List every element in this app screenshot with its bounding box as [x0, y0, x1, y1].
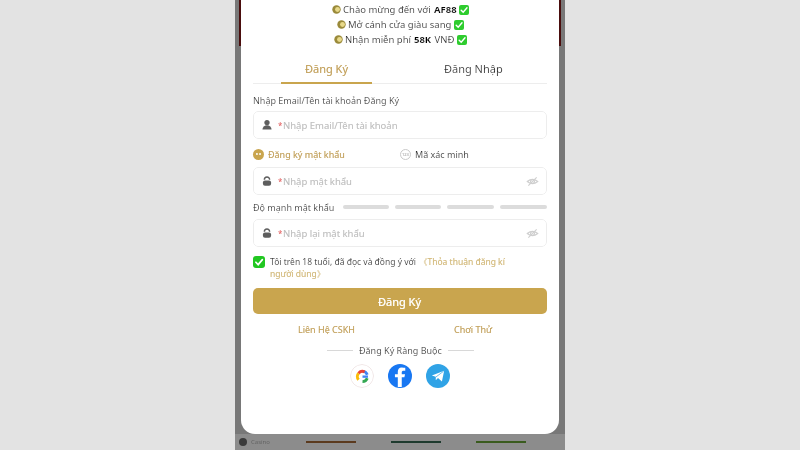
staticText: Nhập Email/Tên tài khoản [283, 119, 398, 132]
staticText: Độ mạnh mật khẩu [253, 201, 335, 213]
staticText: AF88 [434, 3, 457, 16]
staticText: Casino [251, 438, 270, 446]
button[interactable]: Đăng Ký [253, 55, 400, 81]
button[interactable]: * [253, 219, 547, 247]
staticText: Liên Hệ CSKH [298, 323, 355, 335]
staticText: Đăng Ký Ràng Buộc [359, 344, 442, 356]
staticText: Mở cánh cửa giàu sang [348, 18, 452, 31]
staticText: Đăng Nhập [444, 61, 503, 76]
staticText: Mã xác minh [415, 148, 469, 160]
button[interactable]: Đăng ký mật khẩu [253, 146, 400, 162]
staticText: Nhập Email/Tên tài khoản Đăng Ký [253, 94, 400, 106]
staticText: Tôi trên 18 tuổi, đã đọc và đồng ý với [270, 256, 419, 268]
button[interactable]: 123 [400, 146, 547, 162]
button[interactable]: Đăng Ký [253, 288, 547, 314]
staticText: Chào mừng đến với [343, 3, 434, 16]
button[interactable]: Liên Hệ CSKH [253, 322, 400, 336]
button[interactable]: Hiện mật khẩu [526, 227, 539, 240]
staticText: người dùng》 [270, 268, 326, 280]
staticText: 123 [402, 152, 409, 157]
staticText: Nhận miễn phí [345, 33, 414, 46]
staticText: * [278, 176, 283, 187]
button[interactable]: Hiện mật khẩu [526, 175, 539, 188]
staticText: 《Thỏa thuận đăng kí [419, 256, 505, 268]
staticText: Nhập lại mật khẩu [283, 227, 365, 240]
button[interactable]: Chơi Thử [400, 322, 547, 336]
button[interactable]: Đăng nhập với Google [350, 364, 374, 388]
staticText: Nhập mật khẩu [283, 175, 352, 188]
button[interactable]: * [253, 111, 547, 139]
button[interactable]: Tôi trên 18 tuổi, đã đọc và đồng ý với [253, 256, 547, 280]
staticText: VNĐ [432, 33, 455, 46]
staticText: Đăng Ký [305, 61, 349, 76]
staticText: 58K [414, 33, 432, 46]
button[interactable]: * [253, 167, 547, 195]
staticText: Đăng Ký [378, 294, 422, 309]
staticText: Chơi Thử [454, 323, 493, 335]
button[interactable]: Đăng nhập với Telegram [426, 364, 450, 388]
button[interactable]: Đăng Nhập [400, 55, 547, 81]
staticText: Đăng ký mật khẩu [268, 148, 345, 160]
staticText: * [278, 228, 283, 239]
staticText: * [278, 120, 283, 131]
button[interactable]: Đăng nhập với Facebook [388, 364, 412, 388]
